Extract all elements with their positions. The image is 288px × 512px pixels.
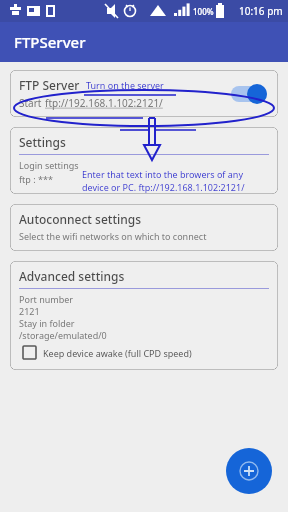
staticText: 10:16 pm (239, 4, 283, 18)
button[interactable]: Autoconnect settings (10, 204, 278, 251)
button[interactable]: Keep device awake (full CPD speed) (19, 346, 269, 363)
staticText: Turn on the server (86, 79, 164, 91)
staticText: device or PC. ftp://192.168.1.102:2121/ (82, 181, 245, 193)
staticText: Stay in folder (19, 317, 75, 329)
staticText: 100% (193, 6, 214, 17)
staticText: ftp : *** (19, 173, 53, 185)
staticText: Select the wifi networks on which to con… (19, 230, 207, 242)
staticText: ftp://192.168.1.102:2121/ (45, 96, 163, 110)
staticText: FTPServer (14, 32, 86, 52)
staticText: Settings (19, 134, 66, 150)
staticText: Enter that text into the browers of any (82, 168, 243, 180)
staticText: 2121 (19, 305, 40, 317)
staticText: Advanced settings (19, 268, 125, 284)
staticText: FTP Server (19, 77, 80, 93)
staticText: Start (19, 96, 45, 110)
button[interactable]: FTP Server (10, 70, 278, 117)
button[interactable]: Advanced settings (10, 261, 278, 370)
staticText: Port number (19, 293, 74, 305)
button[interactable]: Add (226, 448, 272, 494)
staticText: /storage/emulated/0 (19, 329, 107, 341)
staticText: Autoconnect settings (19, 211, 142, 227)
staticText: Login settings (19, 159, 79, 171)
button[interactable]: Toggle server (229, 83, 269, 105)
staticText: Keep device awake (full CPD speed) (43, 347, 192, 359)
button[interactable]: Settings (10, 127, 278, 194)
